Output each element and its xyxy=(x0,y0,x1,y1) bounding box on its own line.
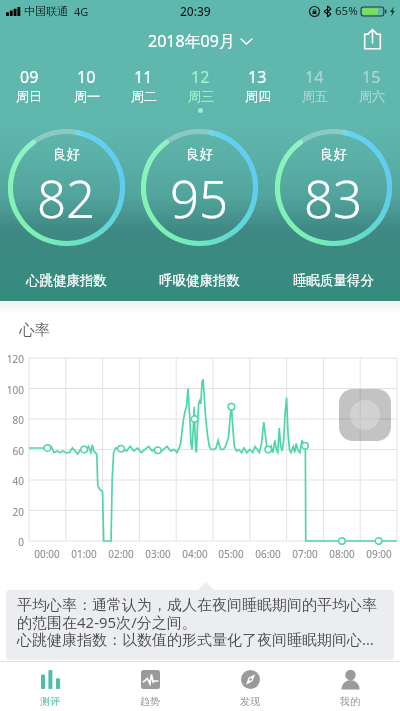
staticText: 我的 xyxy=(340,695,360,708)
staticText: 14 xyxy=(305,66,324,88)
staticText: 00:00 xyxy=(29,547,65,561)
staticText: 测评 xyxy=(40,695,60,708)
staticText: 0 xyxy=(0,535,24,549)
staticText: 04:00 xyxy=(177,547,213,561)
staticText: 周三 xyxy=(188,88,214,104)
button[interactable]: 趋势 xyxy=(100,661,200,711)
button[interactable]: 09 xyxy=(0,64,58,114)
staticText: 发现 xyxy=(240,695,260,708)
button[interactable]: 良好 xyxy=(275,129,392,246)
button[interactable]: 良好 xyxy=(8,129,125,246)
staticText: 20 xyxy=(0,505,24,519)
staticText: 周五 xyxy=(302,88,328,104)
staticText: 11 xyxy=(134,66,153,88)
staticText: 周一 xyxy=(74,88,100,104)
staticText: 20:39 xyxy=(180,3,211,19)
staticText: 65% xyxy=(335,3,358,19)
staticText: 呼吸健康指数 xyxy=(159,272,240,289)
staticText: 08:00 xyxy=(324,547,360,561)
staticText: 平均心率：通常认为，成人在夜间睡眠期间的平均心率 xyxy=(17,596,377,615)
staticText: 95 xyxy=(170,163,229,232)
staticText: 4G xyxy=(74,4,89,19)
button[interactable]: 发现 xyxy=(200,661,300,711)
staticText: 03:00 xyxy=(140,547,176,561)
staticText: 趋势 xyxy=(140,695,160,708)
button[interactable]: 测评 xyxy=(0,661,100,711)
staticText: 82 xyxy=(37,163,96,232)
staticText: 10 xyxy=(77,66,96,88)
button[interactable]: 我的 xyxy=(300,661,400,711)
button[interactable]: AssistiveTouch xyxy=(339,389,391,441)
staticText: 13 xyxy=(248,66,267,88)
button[interactable]: Share xyxy=(356,23,388,55)
staticText: 良好 xyxy=(186,146,213,163)
staticText: 良好 xyxy=(320,146,347,163)
staticText: 睡眠质量得分 xyxy=(293,272,374,289)
staticText: 周六 xyxy=(359,88,385,104)
staticText: 心跳健康指数：以数值的形式量化了夜间睡眠期间心… xyxy=(17,629,374,649)
staticText: 01:00 xyxy=(66,547,102,561)
staticText: 83 xyxy=(304,163,363,232)
staticText: 15 xyxy=(362,66,381,88)
button[interactable]: 11 xyxy=(115,64,172,114)
button[interactable]: 2018年09月 xyxy=(144,26,256,56)
button[interactable]: 15 xyxy=(343,64,400,114)
staticText: 2018年09月 xyxy=(148,30,235,52)
staticText: 心率 xyxy=(19,320,50,340)
staticText: 周四 xyxy=(245,88,271,104)
staticText: 心跳健康指数 xyxy=(26,272,107,289)
staticText: 12 xyxy=(191,66,210,88)
staticText: 09 xyxy=(20,66,39,88)
staticText: 02:00 xyxy=(103,547,139,561)
button[interactable]: 13 xyxy=(229,64,286,114)
staticText: 100 xyxy=(0,383,24,397)
staticText: 09:00 xyxy=(361,547,397,561)
staticText: 良好 xyxy=(53,146,80,163)
staticText: 07:00 xyxy=(287,547,323,561)
staticText: 05:00 xyxy=(213,547,249,561)
button[interactable]: 平均心率：通常认为，成人在夜间睡眠期间的平均心率 xyxy=(6,590,394,660)
staticText: 周日 xyxy=(16,88,42,104)
staticText: 中国联通 xyxy=(24,4,68,18)
staticText: 60 xyxy=(0,444,24,458)
button[interactable]: 良好 xyxy=(141,129,258,246)
staticText: 的范围在42-95次/分之间。 xyxy=(17,612,197,632)
button[interactable]: 10 xyxy=(58,64,115,114)
staticText: 40 xyxy=(0,474,24,488)
staticText: 周二 xyxy=(131,88,157,104)
button[interactable]: 14 xyxy=(286,64,343,114)
staticText: 120 xyxy=(0,352,24,366)
button[interactable]: 12 xyxy=(172,64,229,114)
staticText: 06:00 xyxy=(250,547,286,561)
staticText: 80 xyxy=(0,413,24,427)
